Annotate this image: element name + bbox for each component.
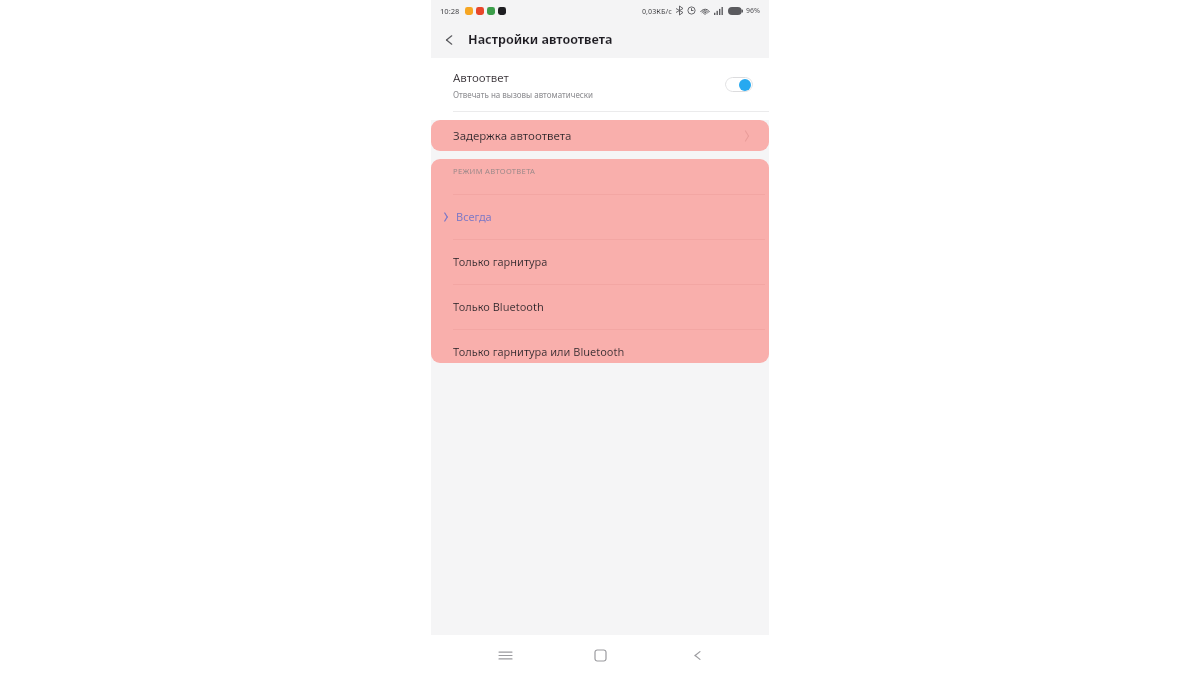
button[interactable]: Только Bluetooth [431,295,769,318]
button[interactable]: Автоответ включён [725,77,753,92]
staticText: Отвечать на вызовы автоматически [453,89,593,100]
staticText: Задержка автоответа [453,128,572,144]
staticText: Только гарнитура или Bluetooth [453,344,625,359]
button[interactable]: Только гарнитура [431,250,769,273]
staticText: РЕЖИМ АВТООТВЕТА [453,166,536,176]
staticText: Только Bluetooth [453,299,544,314]
staticText: Всегда [456,209,492,224]
staticText: Автоответ [453,70,509,86]
button[interactable]: Назад [674,635,718,675]
button[interactable]: Назад [431,23,465,57]
button[interactable]: Только гарнитура или Bluetooth [431,340,769,363]
staticText: 10:28 [440,6,460,16]
staticText: 0,03КБ/c [642,6,672,16]
button[interactable]: Недавние приложения [483,635,527,675]
button[interactable]: Автоответ [431,58,769,111]
button[interactable]: Всегда [431,205,769,228]
button[interactable]: Задержка автоответа [431,120,769,151]
staticText: Настройки автоответа [468,31,613,48]
button[interactable]: Главный экран [578,635,622,675]
staticText: Только гарнитура [453,254,548,269]
staticText: 96% [746,6,760,16]
